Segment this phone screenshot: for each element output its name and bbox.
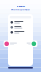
staticText: Reverse bbox=[16, 4, 24, 8]
staticText: Phone Lookup bbox=[11, 8, 30, 11]
